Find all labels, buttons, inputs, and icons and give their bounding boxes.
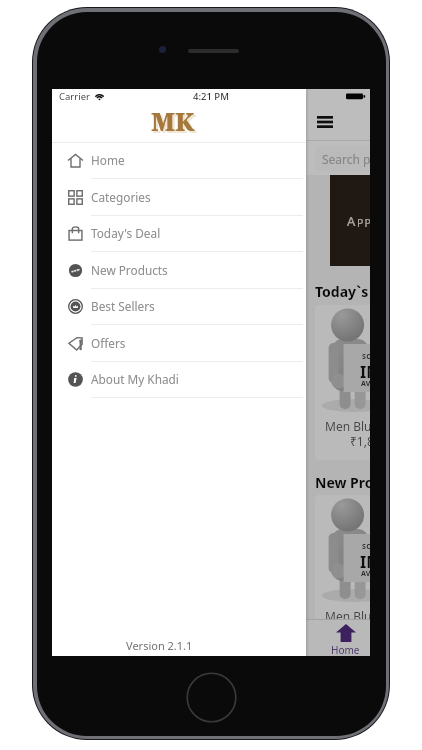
button[interactable]: Categories [52, 179, 306, 216]
button[interactable]: A [330, 175, 370, 266]
staticText: Today`s Deal [315, 282, 370, 301]
staticText: Carrier [59, 90, 90, 103]
staticText: Categories [91, 189, 151, 205]
staticText: MK [151, 104, 195, 138]
staticText: About My Khadi [91, 371, 179, 387]
staticText: SORRY [362, 542, 370, 552]
staticText: AVAILABLE [361, 569, 370, 579]
button[interactable]: Offers [52, 325, 306, 362]
button[interactable]: Best Sellers [52, 288, 306, 325]
staticText: Men Blue Kurta [325, 608, 370, 624]
staticText: MK [153, 106, 197, 140]
staticText: New Products [91, 262, 168, 278]
staticText: 4:21 PM [193, 90, 229, 103]
staticText: ₹1,800 [350, 433, 370, 449]
staticText: New Products [315, 473, 370, 492]
staticText: IMAGE [360, 361, 370, 383]
staticText: Search products [322, 151, 370, 167]
staticText: AVAILABLE [361, 379, 370, 389]
button[interactable]: New Products [52, 252, 306, 289]
staticText: Version 2.1.1 [126, 638, 193, 653]
staticText: Today's Deal [91, 225, 161, 241]
button[interactable]: Today's Deal [52, 215, 306, 252]
staticText: IMAGE [360, 551, 370, 573]
staticText: ₹1,800 [350, 623, 370, 639]
staticText: Offers [91, 335, 126, 351]
button[interactable]: Open navigation menu [317, 116, 333, 128]
button[interactable]: Home [52, 142, 306, 179]
button[interactable]: SORRY [315, 305, 370, 460]
staticText: SORRY [362, 352, 370, 362]
button[interactable]: Search products [315, 146, 370, 171]
staticText: Home [331, 643, 360, 656]
staticText: Men Blue Kurta [325, 418, 370, 434]
staticText: A [347, 212, 357, 230]
staticText: PPAREL [357, 216, 370, 230]
staticText: Home [91, 152, 125, 168]
button[interactable]: About My Khadi [52, 361, 306, 398]
button[interactable]: Home [306, 620, 370, 656]
button[interactable]: SORRY [315, 495, 370, 650]
staticText: Best Sellers [91, 298, 155, 314]
